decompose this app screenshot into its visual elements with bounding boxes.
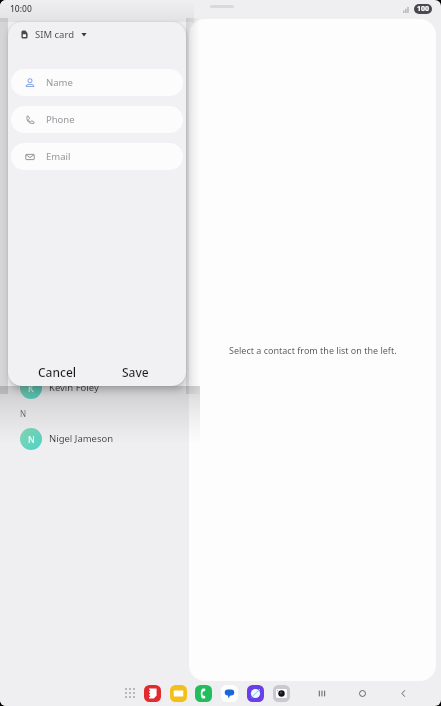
button[interactable]: Apps — [122, 685, 138, 701]
button[interactable]: App — [247, 685, 264, 702]
button[interactable]: App — [221, 685, 238, 702]
staticText: Name — [46, 76, 73, 89]
staticText: Select a contact from the list on the le… — [229, 344, 397, 356]
button[interactable]: Save — [107, 358, 186, 386]
staticText: Cancel — [38, 364, 77, 380]
staticText: Save — [122, 364, 149, 380]
button[interactable]: App — [195, 685, 212, 702]
staticText: K — [28, 382, 34, 394]
staticText: 100 — [417, 4, 430, 14]
staticText: Email — [46, 150, 71, 163]
button[interactable]: N — [0, 422, 188, 455]
button[interactable]: K — [0, 371, 188, 404]
staticText: N — [28, 433, 35, 445]
button[interactable]: App — [273, 685, 290, 702]
staticText: SIM card — [35, 28, 74, 41]
button[interactable]: Recents — [307, 681, 335, 705]
button[interactable]: App — [170, 685, 187, 702]
button[interactable]: Cancel — [8, 358, 107, 386]
staticText: Nigel Jameson — [49, 432, 114, 445]
button[interactable]: Name — [11, 69, 183, 96]
staticText: Kevin Foley — [49, 381, 99, 394]
button[interactable]: Phone — [11, 106, 183, 133]
button[interactable]: Email — [11, 143, 183, 170]
button[interactable]: Home — [348, 681, 376, 705]
staticText: 10:00 — [10, 3, 32, 15]
button[interactable]: App — [144, 685, 161, 702]
button[interactable]: SIM card — [19, 25, 89, 44]
staticText: Phone — [46, 113, 75, 126]
staticText: N — [20, 408, 27, 419]
button[interactable]: Back — [389, 681, 417, 705]
